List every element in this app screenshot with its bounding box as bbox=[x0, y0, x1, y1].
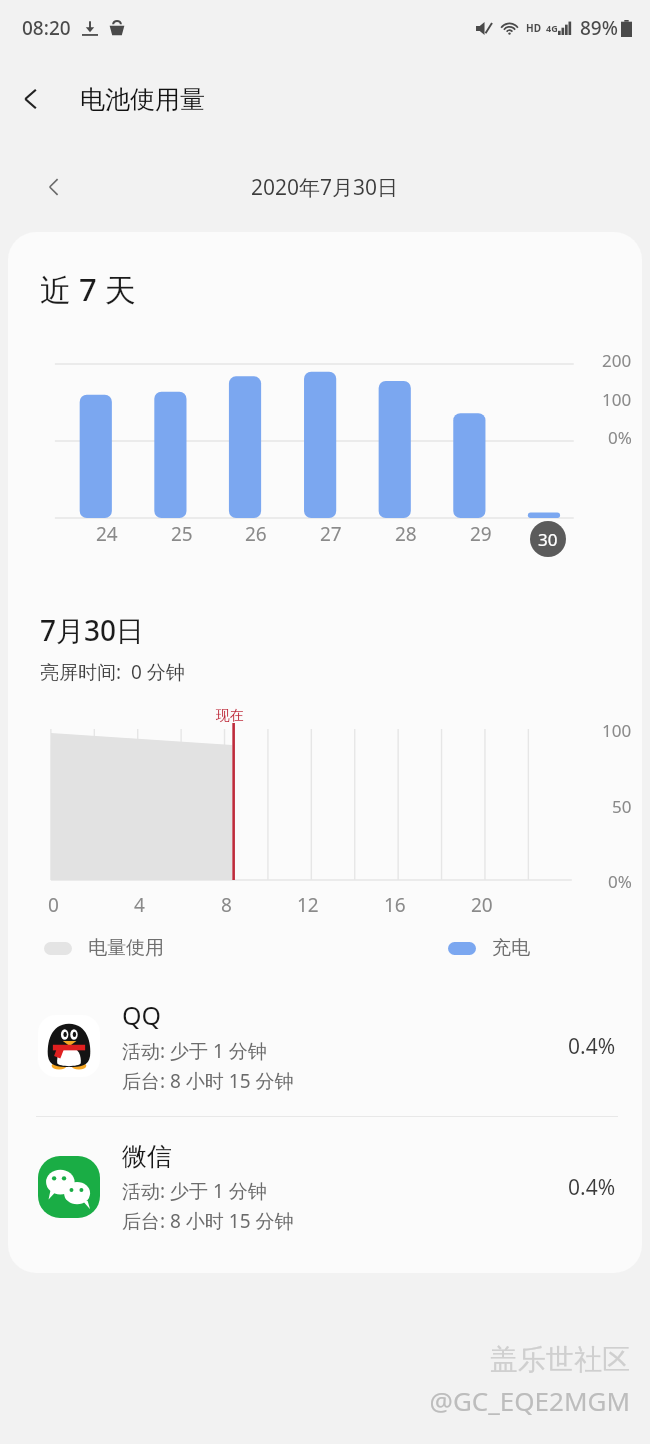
staticText: 0% bbox=[608, 426, 632, 449]
staticText: 50 bbox=[612, 795, 632, 818]
staticText: 89% bbox=[580, 15, 618, 41]
staticText: 2020年7月30日 bbox=[251, 173, 399, 202]
button[interactable]: QQ bbox=[8, 976, 642, 1116]
staticText: 后台: 8 小时 15 分钟 bbox=[122, 1208, 294, 1234]
staticText: 29 bbox=[470, 521, 492, 547]
staticText: QQ bbox=[122, 998, 162, 1032]
staticText: 电池使用量 bbox=[80, 84, 205, 115]
staticText: 电量使用 bbox=[88, 936, 164, 960]
staticText: 0 bbox=[48, 892, 59, 918]
staticText: 08:20 bbox=[22, 15, 71, 41]
staticText: 0.4% bbox=[568, 1173, 616, 1202]
staticText: 活动: 少于 1 分钟 bbox=[122, 1038, 267, 1064]
staticText: 25 bbox=[171, 521, 193, 547]
staticText: 4 bbox=[134, 892, 145, 918]
staticText: 活动: 少于 1 分钟 bbox=[122, 1178, 267, 1204]
staticText: 27 bbox=[320, 521, 342, 547]
staticText: 近 7 天 bbox=[40, 268, 136, 310]
staticText: 4G bbox=[546, 22, 558, 34]
button[interactable]: Previous day bbox=[32, 165, 76, 209]
staticText: 28 bbox=[395, 521, 417, 547]
staticText: 200 bbox=[602, 349, 632, 372]
staticText: 20 bbox=[471, 892, 493, 918]
staticText: 24 bbox=[96, 521, 118, 547]
staticText: 100 bbox=[602, 719, 632, 742]
staticText: 100 bbox=[602, 388, 632, 411]
staticText: 8 bbox=[221, 892, 232, 918]
staticText: 后台: 8 小时 15 分钟 bbox=[122, 1068, 294, 1094]
staticText: 微信 bbox=[122, 1141, 172, 1172]
staticText: 16 bbox=[384, 892, 406, 918]
staticText: 0.4% bbox=[568, 1032, 616, 1061]
staticText: 26 bbox=[245, 521, 267, 547]
button[interactable]: Back bbox=[0, 68, 62, 130]
staticText: 12 bbox=[297, 892, 319, 918]
staticText: 现在 bbox=[216, 707, 244, 725]
staticText: 充电 bbox=[492, 936, 530, 960]
staticText: 盖乐世社区 bbox=[490, 1342, 630, 1377]
staticText: @GC_EQE2MGM bbox=[429, 1383, 630, 1418]
staticText: 0% bbox=[608, 870, 632, 893]
button[interactable]: 微信 bbox=[8, 1117, 642, 1257]
staticText: HD bbox=[526, 21, 541, 35]
staticText: 30 bbox=[538, 528, 558, 551]
staticText: 亮屏时间: 0 分钟 bbox=[40, 659, 185, 685]
staticText: 7月30日 bbox=[40, 611, 145, 649]
